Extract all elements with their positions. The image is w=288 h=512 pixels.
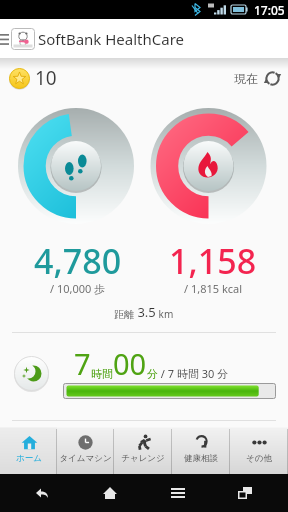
- staticText: 分: [147, 367, 158, 381]
- staticText: 00: [113, 344, 147, 383]
- staticText: タイムマシン: [59, 453, 112, 464]
- staticText: 健康相談: [184, 453, 218, 464]
- staticText: 17:05: [254, 2, 285, 18]
- button[interactable]: ホーム: [0, 427, 57, 474]
- staticText: 時間: [91, 367, 113, 381]
- button[interactable]: App icon: [11, 28, 35, 50]
- staticText: / 7 時間 30 分: [158, 366, 229, 381]
- staticText: SoftBank HealthCare: [38, 29, 185, 49]
- staticText: 10: [35, 65, 57, 91]
- button[interactable]: チャレンジ: [114, 427, 172, 474]
- button[interactable]: Sleep: [14, 356, 49, 391]
- staticText: チャレンジ: [121, 453, 165, 464]
- staticText: / 1,815 kcal: [184, 281, 243, 296]
- staticText: / 10,000 歩: [50, 281, 106, 296]
- staticText: 3.5: [134, 303, 156, 321]
- button[interactable]: 10: [9, 65, 52, 91]
- button[interactable]: 健康相談: [172, 427, 230, 474]
- staticText: ホーム: [16, 453, 42, 464]
- button[interactable]: タイムマシン: [57, 427, 114, 474]
- button[interactable]: 現在: [234, 70, 275, 87]
- staticText: 4,780: [34, 238, 122, 278]
- staticText: 1,158: [169, 238, 257, 278]
- staticText: 現在: [234, 71, 258, 86]
- staticText: 7: [74, 344, 91, 383]
- staticText: その他: [246, 453, 272, 464]
- staticText: 距離: [114, 308, 134, 321]
- button[interactable]: その他: [230, 427, 288, 474]
- button[interactable]: Menu: [0, 27, 9, 51]
- staticText: km: [156, 307, 174, 321]
